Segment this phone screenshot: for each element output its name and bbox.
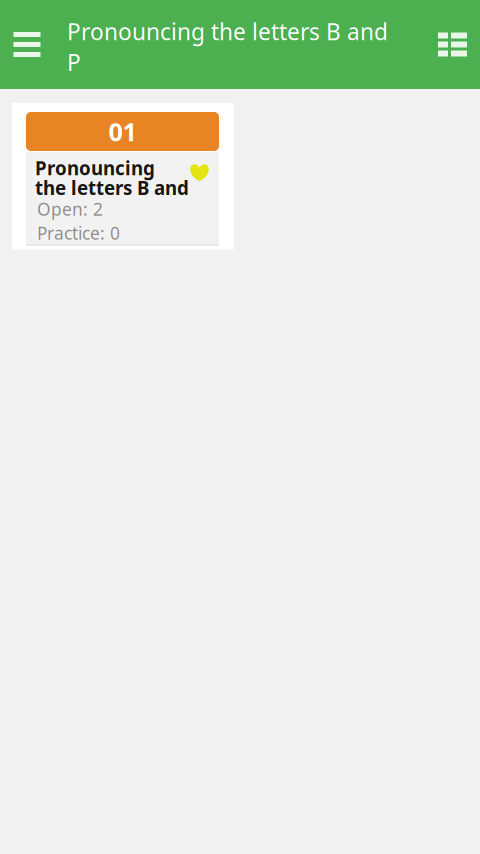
staticText: Pronouncing the letters B and [35, 158, 189, 198]
button[interactable]: 01 [12, 103, 234, 249]
button[interactable]: List view [425, 0, 480, 89]
staticText: Open: 2 [37, 200, 103, 219]
staticText: Pronouncing the letters B and P [67, 16, 388, 78]
staticText: Practice: 0 [37, 224, 120, 242]
button[interactable]: Menu [0, 0, 54, 89]
staticText: 01 [108, 115, 136, 148]
